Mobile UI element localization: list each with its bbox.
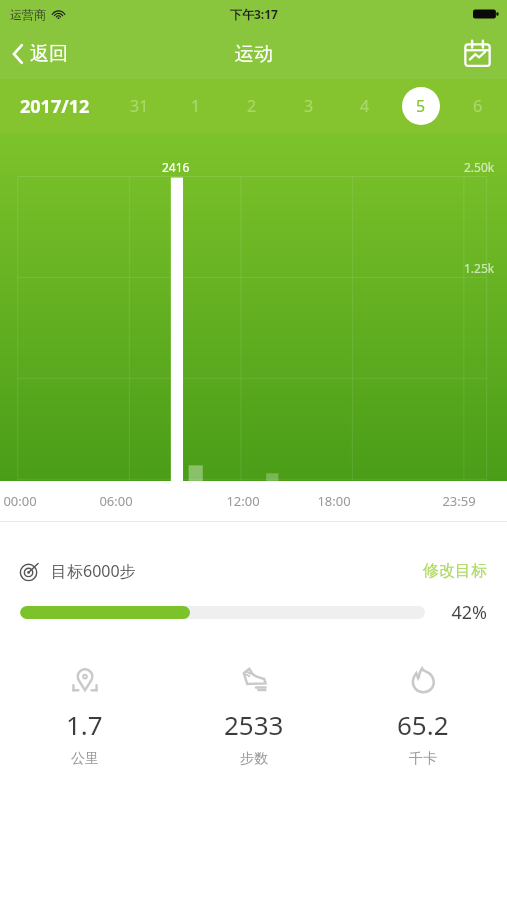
button[interactable]: 4 bbox=[346, 87, 384, 125]
button[interactable]: 5 bbox=[402, 87, 440, 125]
staticText: 2533 bbox=[224, 707, 284, 742]
staticText: 1 bbox=[191, 95, 201, 117]
staticText: 目标6000步 bbox=[51, 560, 136, 582]
staticText: 运营商 bbox=[10, 7, 46, 22]
staticText: 6 bbox=[473, 95, 483, 117]
staticText: 千卡 bbox=[409, 750, 437, 768]
staticText: 65.2 bbox=[397, 707, 449, 742]
button[interactable]: 3 bbox=[290, 87, 328, 125]
button[interactable]: 返回 bbox=[0, 28, 80, 79]
staticText: 2017/12 bbox=[20, 94, 90, 119]
button[interactable]: 2 bbox=[233, 87, 271, 125]
button[interactable]: 1 bbox=[177, 87, 215, 125]
staticText: 31 bbox=[130, 95, 149, 117]
staticText: 修改目标 bbox=[423, 561, 487, 581]
staticText: 1.25k bbox=[464, 260, 495, 276]
staticText: 23:59 bbox=[433, 492, 485, 510]
staticText: 00:00 bbox=[0, 492, 46, 510]
staticText: 2416 bbox=[162, 159, 190, 175]
button[interactable]: 31 bbox=[120, 87, 158, 125]
button[interactable]: 修改目标 bbox=[423, 561, 487, 581]
staticText: 1.7 bbox=[66, 707, 103, 742]
staticText: 4 bbox=[360, 95, 370, 117]
staticText: 2.50k bbox=[464, 159, 495, 175]
staticText: 18:00 bbox=[308, 492, 360, 510]
staticText: 步数 bbox=[240, 750, 268, 768]
staticText: 运动 bbox=[235, 42, 273, 66]
button[interactable]: History chart bbox=[448, 28, 507, 79]
staticText: 2 bbox=[247, 95, 257, 117]
staticText: 返回 bbox=[30, 42, 68, 66]
staticText: 5 bbox=[416, 95, 426, 117]
staticText: 下午3:17 bbox=[230, 6, 278, 22]
staticText: 3 bbox=[304, 95, 314, 117]
button[interactable]: 2533 bbox=[169, 663, 338, 768]
staticText: 06:00 bbox=[90, 492, 142, 510]
button[interactable]: 65.2 bbox=[338, 663, 507, 768]
button[interactable]: 6 bbox=[459, 87, 497, 125]
staticText: 42% bbox=[439, 600, 487, 625]
staticText: 12:00 bbox=[217, 492, 269, 510]
button[interactable]: 1.7 bbox=[0, 663, 169, 768]
staticText: 公里 bbox=[71, 750, 99, 768]
